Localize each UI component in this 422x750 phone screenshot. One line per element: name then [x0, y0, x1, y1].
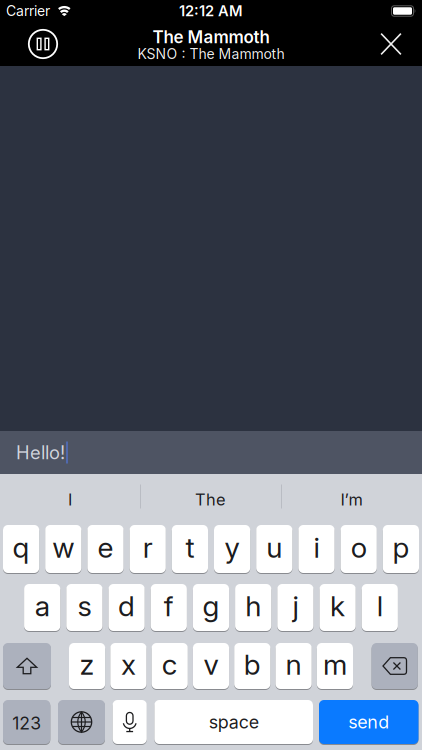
button[interactable]: g [193, 584, 229, 631]
button[interactable]: e [87, 525, 124, 573]
button[interactable]: z [69, 643, 105, 689]
button[interactable]: p [383, 525, 419, 573]
button[interactable]: d [108, 584, 145, 631]
staticText: The Mammoth [152, 27, 269, 47]
button[interactable] [28, 29, 58, 59]
staticText: j [292, 589, 298, 623]
button[interactable]: Hello! [0, 431, 422, 474]
button[interactable] [372, 643, 418, 689]
button[interactable]: c [152, 643, 188, 689]
button[interactable]: i [298, 525, 335, 573]
button[interactable] [113, 700, 147, 744]
button[interactable]: 123 [3, 700, 50, 744]
staticText: d [118, 589, 135, 623]
staticText: r [143, 531, 153, 564]
staticText: KSNO : The Mammoth [137, 46, 284, 62]
staticText: 123 [12, 713, 41, 733]
staticText: l [377, 589, 383, 623]
staticText: c [162, 648, 178, 681]
staticText: I’m [340, 490, 362, 509]
button[interactable]: u [256, 525, 292, 573]
staticText: p [392, 531, 409, 564]
staticText: g [202, 589, 219, 623]
staticText: i [313, 531, 319, 564]
staticText: I [68, 490, 72, 509]
staticText: t [185, 531, 194, 564]
button[interactable]: w [45, 525, 81, 573]
staticText: The [195, 490, 226, 509]
button[interactable]: x [110, 643, 146, 689]
button[interactable]: s [66, 584, 102, 631]
staticText: v [203, 648, 218, 681]
button[interactable]: o [341, 525, 377, 573]
staticText: k [330, 589, 345, 623]
staticText: z [80, 648, 95, 681]
button[interactable]: h [235, 584, 271, 631]
staticText: send [348, 711, 389, 733]
staticText: s [77, 589, 91, 623]
button[interactable]: q [3, 525, 39, 573]
staticText: q [13, 531, 30, 564]
staticText: Carrier [6, 3, 50, 19]
button[interactable]: The [140, 474, 281, 525]
staticText: e [97, 531, 113, 564]
staticText: x [121, 648, 136, 681]
staticText: a [35, 589, 50, 623]
staticText: m [323, 648, 347, 681]
button[interactable]: r [130, 525, 166, 573]
staticText: f [164, 589, 174, 623]
button[interactable]: k [319, 584, 356, 631]
button[interactable]: j [277, 584, 313, 631]
staticText: space [209, 711, 259, 733]
button[interactable]: v [193, 643, 229, 689]
staticText: w [52, 531, 74, 564]
button[interactable] [380, 33, 401, 55]
staticText: 12:12 AM [179, 2, 243, 20]
button[interactable]: m [317, 643, 353, 689]
staticText: h [245, 589, 261, 623]
button[interactable]: n [275, 643, 312, 689]
button[interactable]: l [362, 584, 398, 631]
button[interactable] [58, 700, 105, 744]
button[interactable]: t [172, 525, 208, 573]
button[interactable] [3, 643, 51, 689]
button[interactable]: f [151, 584, 187, 631]
button[interactable]: send [319, 700, 418, 744]
staticText: b [244, 648, 261, 681]
button[interactable]: a [24, 584, 60, 631]
staticText: n [286, 648, 302, 681]
button[interactable]: I [0, 474, 140, 525]
button[interactable]: I’m [281, 474, 422, 525]
staticText: Hello! [16, 442, 65, 463]
staticText: u [266, 531, 282, 564]
staticText: y [225, 531, 240, 564]
staticText: o [351, 531, 367, 564]
button[interactable]: y [214, 525, 250, 573]
button[interactable]: space [154, 700, 313, 744]
button[interactable]: b [234, 643, 270, 689]
